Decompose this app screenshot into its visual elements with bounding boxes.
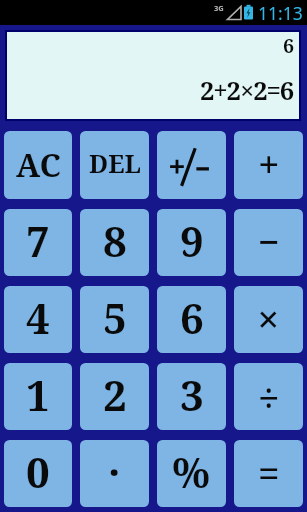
- staticText: =: [258, 446, 280, 498]
- staticText: 7: [26, 212, 50, 269]
- button[interactable]: +: [234, 131, 303, 199]
- button[interactable]: ÷: [234, 363, 303, 430]
- button[interactable]: 6: [157, 286, 226, 353]
- staticText: 8: [103, 212, 127, 269]
- button[interactable]: 1: [4, 363, 72, 430]
- staticText: 9: [180, 212, 204, 269]
- staticText: 3G: [214, 3, 224, 13]
- button[interactable]: [157, 131, 226, 199]
- staticText: AC: [16, 143, 61, 187]
- staticText: 0: [26, 443, 50, 500]
- staticText: ·: [108, 443, 121, 500]
- button[interactable]: 4: [4, 286, 72, 353]
- button[interactable]: AC: [4, 131, 72, 199]
- button[interactable]: ·: [80, 440, 149, 507]
- staticText: DEL: [89, 146, 141, 180]
- staticText: 2+2×2=6: [200, 73, 294, 108]
- staticText: 1: [26, 366, 50, 423]
- button[interactable]: 7: [4, 209, 72, 276]
- staticText: +: [258, 137, 280, 189]
- button[interactable]: 8: [80, 209, 149, 276]
- button[interactable]: −: [234, 209, 303, 276]
- button[interactable]: 2: [80, 363, 149, 430]
- button[interactable]: DEL: [80, 131, 149, 199]
- button[interactable]: ×: [234, 286, 303, 353]
- staticText: 5: [103, 289, 127, 346]
- staticText: ÷: [258, 371, 280, 423]
- button[interactable]: 0: [4, 440, 72, 507]
- button[interactable]: 9: [157, 209, 226, 276]
- staticText: ×: [257, 291, 280, 345]
- staticText: 6: [180, 289, 204, 346]
- staticText: 2: [103, 366, 127, 423]
- staticText: 3: [180, 366, 204, 423]
- staticText: 4: [26, 289, 50, 346]
- staticText: 11:13: [258, 1, 303, 25]
- button[interactable]: 5: [80, 286, 149, 353]
- button[interactable]: 3: [157, 363, 226, 430]
- staticText: 6: [283, 32, 295, 59]
- staticText: %: [172, 443, 211, 500]
- staticText: −: [258, 215, 280, 267]
- button[interactable]: =: [234, 440, 303, 507]
- button[interactable]: %: [157, 440, 226, 507]
